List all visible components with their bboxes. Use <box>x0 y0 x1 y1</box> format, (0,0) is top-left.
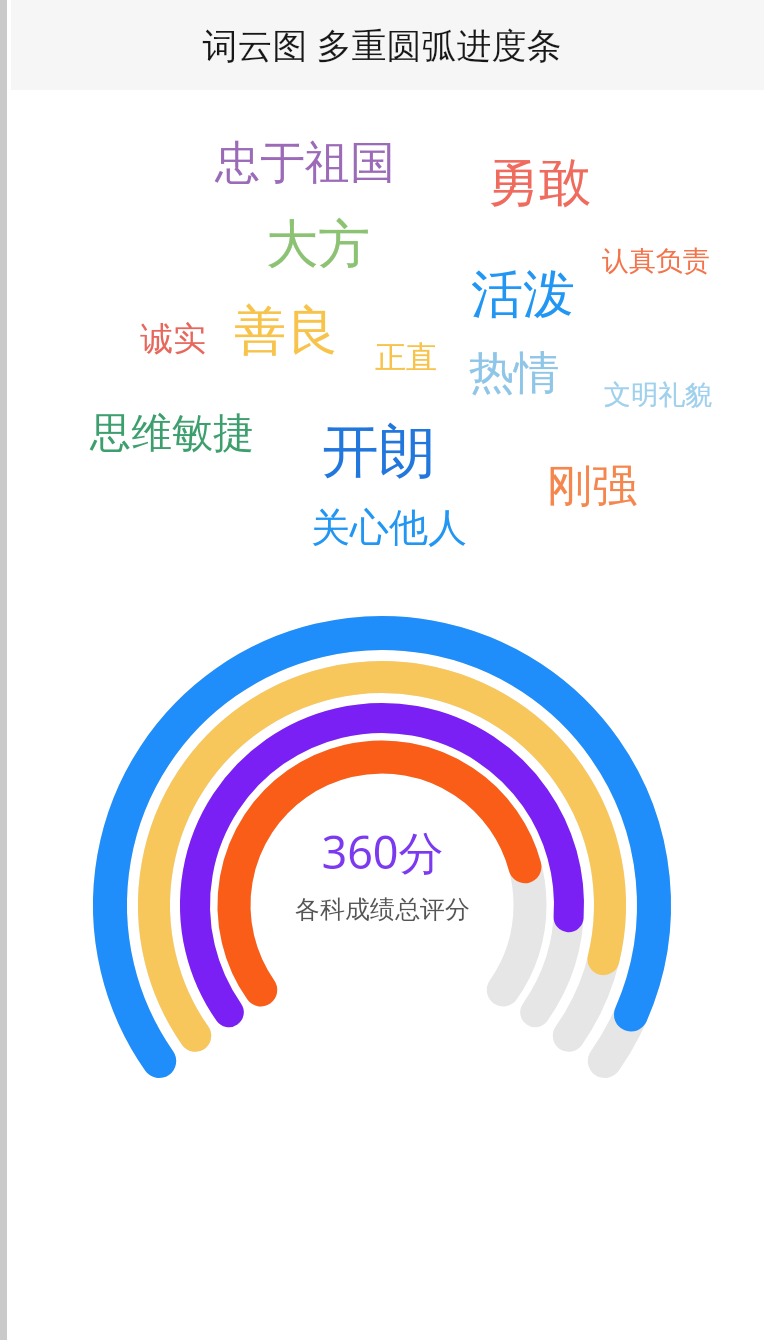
button[interactable]: 热情 <box>469 345 559 402</box>
button[interactable]: 诚实 <box>140 318 206 360</box>
button[interactable]: 善良 <box>234 298 338 364</box>
button[interactable]: 勇敢 <box>487 150 591 216</box>
staticText: 360分 <box>321 821 444 882</box>
button[interactable]: 文明礼貌 <box>604 378 712 412</box>
button[interactable]: 刚强 <box>547 458 637 515</box>
button[interactable]: 大方 <box>266 212 370 278</box>
other: 各科成绩总评分 360分 <box>92 586 672 1086</box>
button[interactable]: 活泼 <box>471 262 575 328</box>
button[interactable]: 忠于祖国 <box>215 135 395 192</box>
button[interactable]: 关心他人 <box>311 503 467 552</box>
button[interactable]: 思维敏捷 <box>90 408 254 460</box>
button[interactable]: 词云图 多重圆弧进度条 <box>0 0 764 90</box>
staticText: 词云图 多重圆弧进度条 <box>202 21 562 69</box>
button[interactable]: 开朗 <box>322 416 436 488</box>
button[interactable]: 认真负责 <box>602 244 710 278</box>
button[interactable]: 正直 <box>375 338 437 377</box>
staticText: 各科成绩总评分 <box>295 894 470 925</box>
